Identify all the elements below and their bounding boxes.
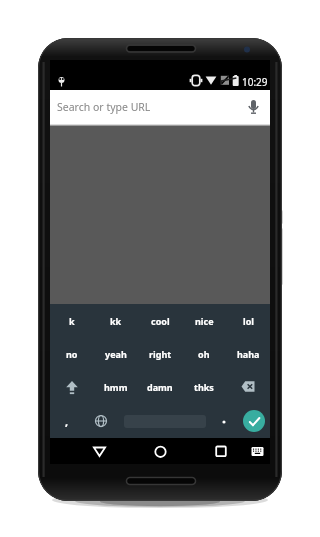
staticText: , [65,414,69,429]
staticText: 10:29 [242,75,268,89]
button[interactable]: thks [182,370,226,404]
button[interactable]: haha [226,337,270,370]
staticText: haha [237,348,260,360]
staticText: lol [243,315,254,327]
staticText: nice [195,315,214,327]
staticText: cool [151,315,170,327]
staticText: k [69,315,75,327]
button[interactable]: oh [182,337,226,370]
staticText: damn [147,381,173,393]
button[interactable] [210,404,237,438]
button[interactable]: no [50,337,94,370]
staticText: kk [110,315,122,327]
button[interactable]: cool [138,304,182,337]
button[interactable] [146,438,174,464]
button[interactable] [237,404,270,438]
staticText: Search or type URL [57,100,151,114]
button[interactable]: kk [94,304,138,337]
button[interactable] [83,404,119,438]
button[interactable] [207,438,235,464]
staticText: right [149,348,172,360]
staticText: thks [194,381,214,393]
staticText: no [66,348,78,360]
staticText: yeah [105,348,127,360]
button[interactable]: lol [226,304,270,337]
button[interactable] [85,438,113,464]
button[interactable]: hmm [94,370,138,404]
button[interactable]: yeah [94,337,138,370]
button[interactable] [226,370,270,404]
staticText: hmm [104,381,128,393]
button[interactable]: right [138,337,182,370]
button[interactable] [119,404,210,438]
button[interactable]: nice [182,304,226,337]
button[interactable] [245,438,269,464]
button[interactable]: Search or type URL [50,90,270,124]
button[interactable]: damn [138,370,182,404]
button[interactable]: , [50,404,83,438]
button[interactable] [50,370,94,404]
staticText: oh [198,348,210,360]
button[interactable]: k [50,304,94,337]
